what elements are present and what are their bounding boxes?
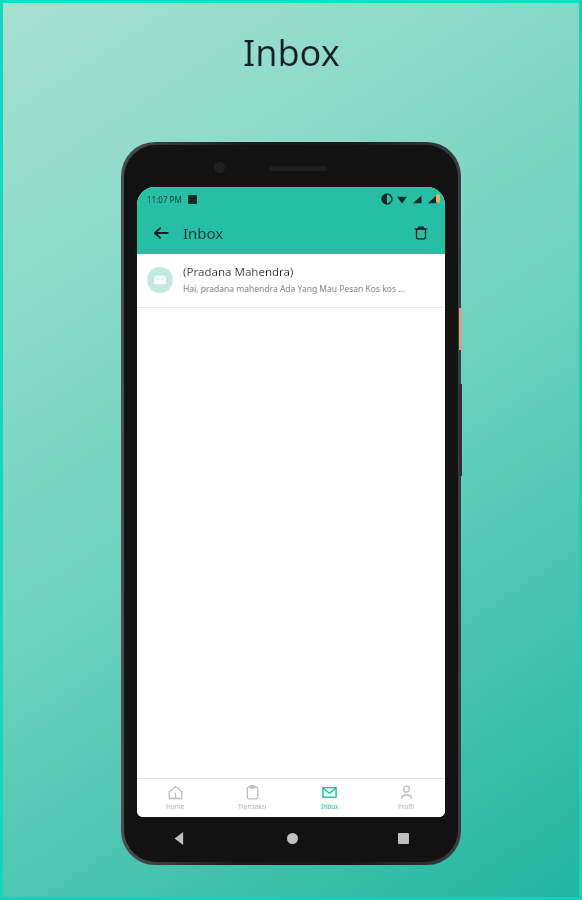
staticText: Inbox: [183, 223, 224, 243]
button[interactable]: Delete: [407, 219, 435, 247]
button[interactable]: Transaksi: [214, 779, 291, 817]
staticText: Inbox: [243, 28, 340, 77]
other: Recents: [398, 833, 409, 844]
staticText: Home: [166, 802, 185, 811]
button[interactable]: Back: [147, 219, 175, 247]
other: Back: [173, 832, 186, 845]
staticText: Transaksi: [238, 802, 267, 811]
staticText: Profil: [398, 802, 415, 811]
staticText: (Pradana Mahendra): [183, 264, 294, 280]
staticText: Inbox: [321, 802, 339, 811]
button[interactable]: Inbox: [291, 779, 368, 817]
button[interactable]: Profil: [368, 779, 445, 817]
staticText: Hai, pradana mahendra Ada Yang Mau Pesan…: [183, 283, 406, 295]
staticText: 11:07 PM: [147, 194, 182, 205]
button[interactable]: (Pradana Mahendra): [137, 254, 445, 307]
other: Home: [287, 833, 298, 844]
button[interactable]: Home: [137, 779, 214, 817]
